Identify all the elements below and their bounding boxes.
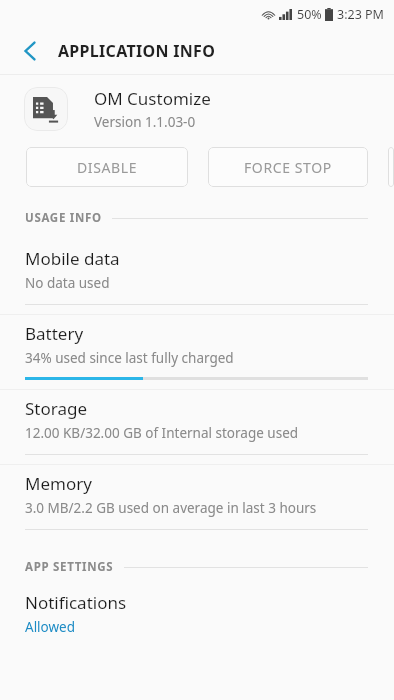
button[interactable]: Notifications [0, 591, 394, 636]
staticText: FORCE STOP [244, 158, 332, 177]
button[interactable]: Storage [0, 390, 394, 464]
staticText: 3:23 PM [337, 6, 384, 23]
button[interactable]: OM Customize [0, 75, 394, 142]
staticText: Mobile data [25, 247, 120, 270]
button[interactable]: FORCE STOP [208, 147, 368, 187]
staticText: 3.0 MB/2.2 GB used on average in last 3 … [25, 499, 317, 517]
staticText: Memory [25, 472, 92, 495]
staticText: 50% [297, 6, 322, 23]
staticText: OM Customize [94, 87, 211, 110]
staticText: 12.00 KB/32.00 GB of Internal storage us… [25, 424, 299, 442]
button[interactable]: Mobile data [0, 240, 394, 314]
staticText: USAGE INFO [25, 210, 102, 226]
staticText: No data used [25, 274, 110, 292]
button[interactable]: Battery [0, 315, 394, 389]
staticText: APP SETTINGS [25, 559, 114, 575]
staticText: APPLICATION INFO [58, 40, 216, 62]
staticText: 34% used since last fully charged [25, 349, 234, 367]
staticText: Version 1.1.03-0 [94, 113, 196, 131]
staticText: Storage [25, 397, 88, 420]
staticText: Notifications [25, 591, 127, 614]
staticText: DISABLE [77, 158, 138, 177]
button[interactable]: DISABLE [26, 147, 188, 187]
button[interactable]: Memory [0, 465, 394, 539]
button[interactable] [388, 147, 394, 187]
button[interactable]: Back [12, 33, 48, 69]
staticText: Allowed [25, 618, 76, 636]
staticText: Battery [25, 322, 84, 345]
